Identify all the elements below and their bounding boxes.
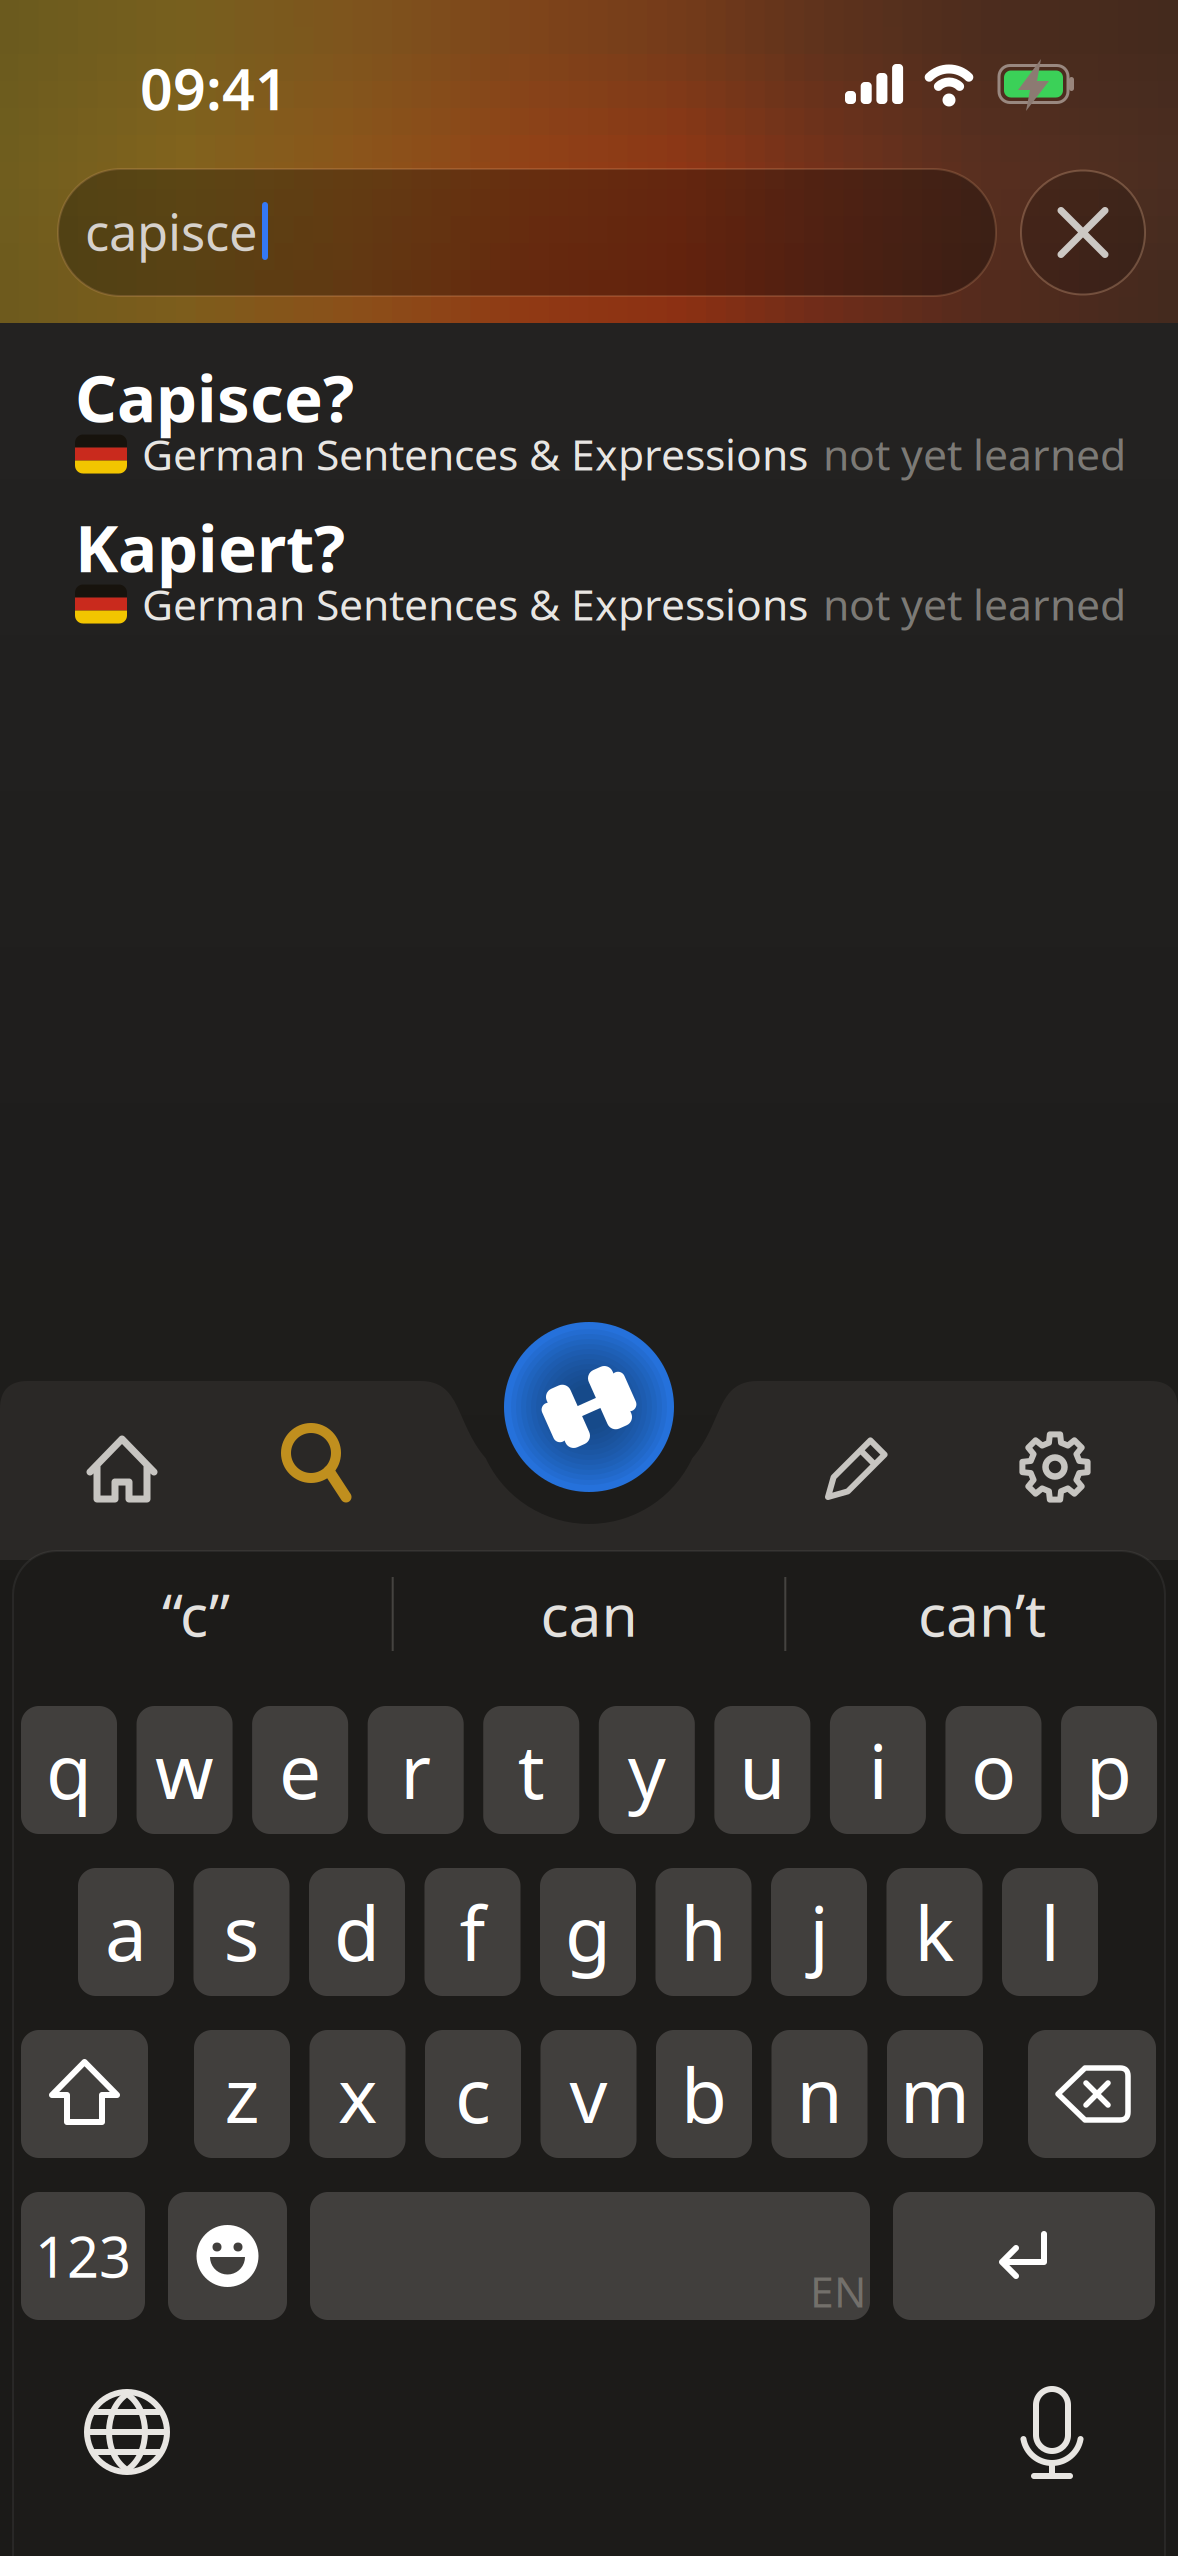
staticText: r (400, 1720, 431, 1820)
button[interactable]: Kapiert? (75, 517, 1178, 657)
button[interactable]: b (656, 2030, 752, 2158)
staticText: h (680, 1882, 726, 1982)
staticText: not yet learned (823, 576, 1126, 632)
button[interactable]: y (599, 1706, 695, 1834)
button[interactable]: Dictate (1012, 2388, 1092, 2480)
button[interactable]: Edit (812, 1423, 902, 1513)
button[interactable]: m (887, 2030, 983, 2158)
button[interactable]: u (714, 1706, 810, 1834)
staticText: German Sentences & Expressions (142, 576, 808, 632)
button[interactable]: d (309, 1868, 405, 1996)
staticText: 09:41 (140, 50, 288, 126)
button[interactable]: Return (893, 2192, 1155, 2320)
button[interactable]: Space (310, 2192, 870, 2320)
button[interactable]: can (404, 1559, 774, 1669)
staticText: t (518, 1720, 545, 1820)
button[interactable]: Numbers (21, 2192, 145, 2320)
button[interactable]: Settings (1010, 1422, 1100, 1512)
button[interactable]: e (252, 1706, 348, 1834)
button[interactable]: f (424, 1868, 520, 1996)
staticText: can’t (918, 1575, 1046, 1653)
staticText: e (279, 1720, 321, 1820)
staticText: p (1086, 1720, 1132, 1820)
button[interactable]: g (540, 1868, 636, 1996)
staticText: g (565, 1882, 611, 1982)
button[interactable]: Search (278, 1423, 358, 1507)
button[interactable]: p (1061, 1706, 1157, 1834)
button[interactable]: k (886, 1868, 982, 1996)
staticText: 123 (35, 2219, 131, 2293)
staticText: “c” (162, 1575, 230, 1653)
button[interactable]: “c” (11, 1559, 381, 1669)
button[interactable]: x (309, 2030, 405, 2158)
staticText: n (796, 2044, 842, 2144)
button[interactable]: a (78, 1868, 174, 1996)
staticText: EN (810, 2263, 866, 2319)
staticText: y (628, 1720, 666, 1820)
staticText: German Sentences & Expressions (142, 426, 808, 482)
staticText: not yet learned (823, 426, 1126, 482)
staticText: j (809, 1882, 828, 1982)
button[interactable]: l (1002, 1868, 1098, 1996)
staticText: l (1040, 1882, 1059, 1982)
staticText: d (334, 1882, 380, 1982)
staticText: can (540, 1575, 637, 1653)
staticText: v (569, 2044, 607, 2144)
staticText: w (155, 1720, 214, 1820)
button[interactable]: o (945, 1706, 1041, 1834)
staticText: a (105, 1882, 147, 1982)
button[interactable]: w (137, 1706, 233, 1834)
button[interactable]: z (194, 2030, 290, 2158)
button[interactable]: Delete (1028, 2030, 1156, 2158)
staticText: s (223, 1882, 259, 1982)
staticText: o (971, 1720, 1016, 1820)
staticText: i (868, 1720, 887, 1820)
button[interactable]: c (425, 2030, 521, 2158)
button[interactable]: can’t (797, 1559, 1167, 1669)
staticText: b (681, 2044, 727, 2144)
button[interactable]: r (368, 1706, 464, 1834)
button[interactable]: n (771, 2030, 867, 2158)
staticText: u (739, 1720, 785, 1820)
button[interactable]: t (483, 1706, 579, 1834)
button[interactable]: Shift (21, 2030, 148, 2158)
staticText: x (338, 2044, 377, 2144)
staticText: k (914, 1882, 954, 1982)
button[interactable]: i (830, 1706, 926, 1834)
button[interactable]: Emoji (168, 2192, 287, 2320)
staticText: f (459, 1882, 485, 1982)
button[interactable]: j (771, 1868, 867, 1996)
button[interactable]: Search field (58, 169, 996, 296)
button[interactable]: q (21, 1706, 117, 1834)
button[interactable]: Clear search (1021, 170, 1145, 294)
staticText: capisce (85, 197, 258, 265)
staticText: z (224, 2044, 259, 2144)
staticText: Kapiert? (75, 504, 345, 590)
button[interactable]: Next keyboard (87, 2392, 167, 2472)
button[interactable]: Home (82, 1425, 162, 1509)
staticText: m (900, 2044, 970, 2144)
staticText: c (455, 2044, 491, 2144)
staticText: q (46, 1720, 92, 1820)
staticText: Capisce? (75, 354, 354, 440)
button[interactable]: h (655, 1868, 751, 1996)
button[interactable]: Practice (504, 1322, 674, 1492)
button[interactable]: v (540, 2030, 636, 2158)
button[interactable]: s (193, 1868, 289, 1996)
button[interactable]: Capisce? (75, 367, 1178, 507)
